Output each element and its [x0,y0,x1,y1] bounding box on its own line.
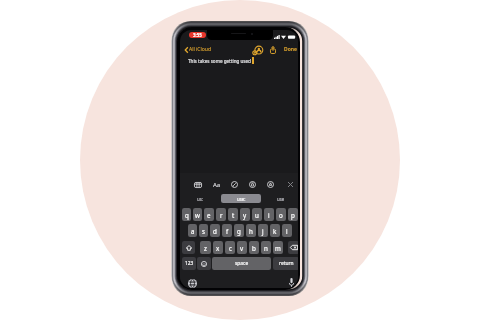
button[interactable]: o [276,208,286,221]
button[interactable]: Shift [182,241,195,254]
staticText: us: [197,196,203,202]
staticText: s [202,227,205,235]
button[interactable]: r [216,208,226,221]
staticText: p [291,211,295,219]
button[interactable]: f [222,224,232,237]
staticText: o [279,211,283,219]
staticText: This takes some getting used [188,58,251,64]
staticText: v [240,244,244,252]
staticText: z [204,244,207,252]
button[interactable]: c [225,241,235,254]
button[interactable]: w [193,208,202,221]
staticText: l [286,227,288,235]
staticText: k [273,227,277,235]
button[interactable]: Table [192,179,203,190]
button[interactable]: Done [282,43,298,56]
staticText: use: [237,196,246,202]
staticText: 123 [185,260,194,267]
button[interactable]: y [240,208,250,221]
button[interactable]: m [273,241,283,254]
button[interactable]: Emoji [197,257,211,270]
staticText: n [264,244,268,252]
button[interactable]: b [249,241,259,254]
staticText: use [277,196,285,202]
staticText: t [232,211,235,219]
button[interactable]: 123 [182,257,196,270]
staticText: r [220,211,223,219]
button[interactable]: Markup [229,179,240,190]
button[interactable]: s [199,224,208,237]
staticText: u [255,211,259,219]
button[interactable]: Dictation [286,277,296,287]
staticText: e [207,211,211,219]
button[interactable]: z [200,241,211,254]
button[interactable]: e [204,208,214,221]
staticText: x [216,244,220,252]
button[interactable]: return [273,257,298,270]
button[interactable]: Backspace [288,241,298,254]
button[interactable]: All iCloud [183,43,214,56]
button[interactable]: d [210,224,220,237]
button[interactable]: Share [268,44,278,56]
staticText: d [213,227,217,235]
button[interactable]: g [234,224,244,237]
button[interactable]: Add people [252,44,263,56]
staticText: m [275,244,281,252]
staticText: return [279,260,294,267]
button[interactable]: p [288,208,298,221]
button[interactable]: h [246,224,256,237]
staticText: g [237,227,241,235]
staticText: b [252,244,256,252]
button[interactable]: j [258,224,268,237]
staticText: h [249,227,253,235]
button[interactable]: Draw [265,179,276,190]
button[interactable]: a [188,224,197,237]
button[interactable]: x [213,241,223,254]
staticText: y [243,211,247,219]
staticText: a [191,227,195,235]
button[interactable]: n [261,241,271,254]
button[interactable]: t [228,208,238,221]
button[interactable]: us: [188,194,212,203]
button[interactable]: Close keyboard toolbar [285,179,296,190]
button[interactable]: use: [221,194,261,203]
button[interactable]: u [252,208,262,221]
button[interactable]: l [282,224,292,237]
staticText: i [268,211,270,219]
staticText: space [235,260,249,267]
button[interactable]: use [269,194,293,203]
staticText: All iCloud [189,46,212,53]
button[interactable]: Camera [247,179,258,190]
button[interactable]: q [182,208,191,221]
button[interactable]: space [212,257,271,270]
staticText: j [262,227,264,235]
button[interactable]: v [237,241,247,254]
button[interactable]: Format [211,179,222,190]
staticText: f [226,227,229,235]
staticText: c [229,244,232,252]
button[interactable]: Change keyboard [187,278,197,288]
staticText: w [195,211,200,219]
staticText: 3:55 [193,32,202,38]
button[interactable]: i [264,208,274,221]
staticText: Aa [213,181,221,189]
staticText: Done [284,46,297,53]
staticText: q [185,211,189,219]
button[interactable]: k [270,224,280,237]
